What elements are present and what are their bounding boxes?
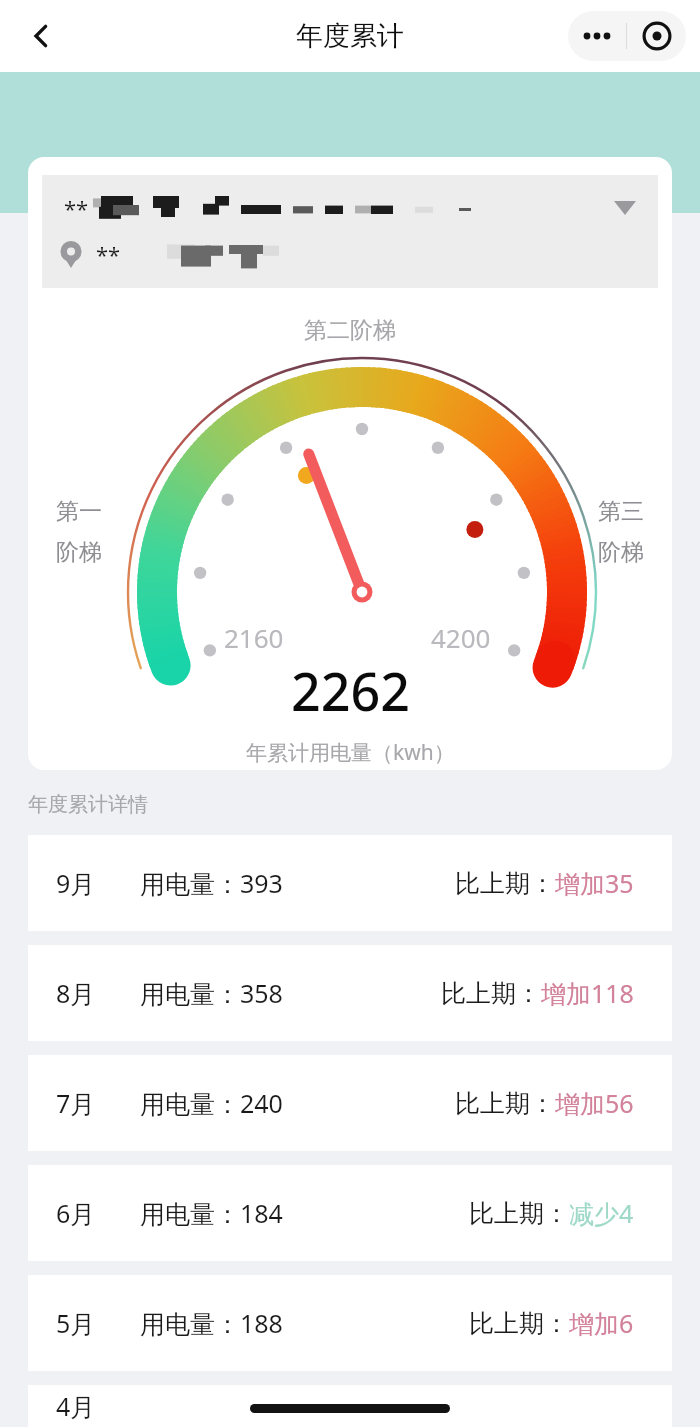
staticText: 4200 [431,620,491,655]
button[interactable]: Target [627,11,686,61]
staticText: 减少4 [569,1196,634,1230]
staticText: 7月 [56,1086,96,1120]
staticText: 用电量：240 [140,1086,283,1120]
staticText: 比上期： [469,1308,569,1339]
button[interactable]: 7月 [28,1055,672,1151]
button[interactable]: More options [568,11,626,61]
staticText: 4月 [56,1389,96,1423]
staticText: 阶梯 [56,538,102,567]
button[interactable]: 5月 [28,1275,672,1371]
staticText: 第二阶梯 [28,316,672,345]
staticText: 8月 [56,976,96,1010]
staticText: 用电量：188 [140,1306,283,1340]
staticText: 阶梯 [598,538,644,567]
staticText: 增加35 [555,866,634,900]
staticText: 年累计用电量（kwh） [246,738,455,767]
staticText: 比上期： [441,978,541,1009]
staticText: 第三 [598,497,644,526]
staticText: 用电量：184 [140,1196,283,1230]
staticText: 比上期： [455,868,555,899]
staticText: 年度累计 [296,19,404,53]
staticText: ** [96,239,121,269]
staticText: 增加6 [569,1306,634,1340]
staticText: ** [64,193,89,223]
staticText: 6月 [56,1196,96,1230]
staticText: 5月 [56,1306,96,1340]
staticText: 增加56 [555,1086,634,1120]
button[interactable]: 9月 [28,835,672,931]
staticText: 9月 [56,866,96,900]
staticText: 增加118 [541,976,634,1010]
button[interactable]: 6月 [28,1165,672,1261]
staticText: 比上期： [469,1198,569,1229]
button[interactable]: Select meter [42,175,658,288]
button[interactable]: 8月 [28,945,672,1041]
button[interactable]: 4月 [28,1385,672,1427]
staticText: 年度累计详情 [28,792,148,817]
staticText: 2160 [224,620,284,655]
staticText: 用电量：393 [140,866,283,900]
staticText: 用电量：358 [140,976,283,1010]
staticText: 比上期： [455,1088,555,1119]
staticText: 第一 [56,497,102,526]
button[interactable]: Back [18,12,66,60]
staticText: 2262 [291,655,410,726]
